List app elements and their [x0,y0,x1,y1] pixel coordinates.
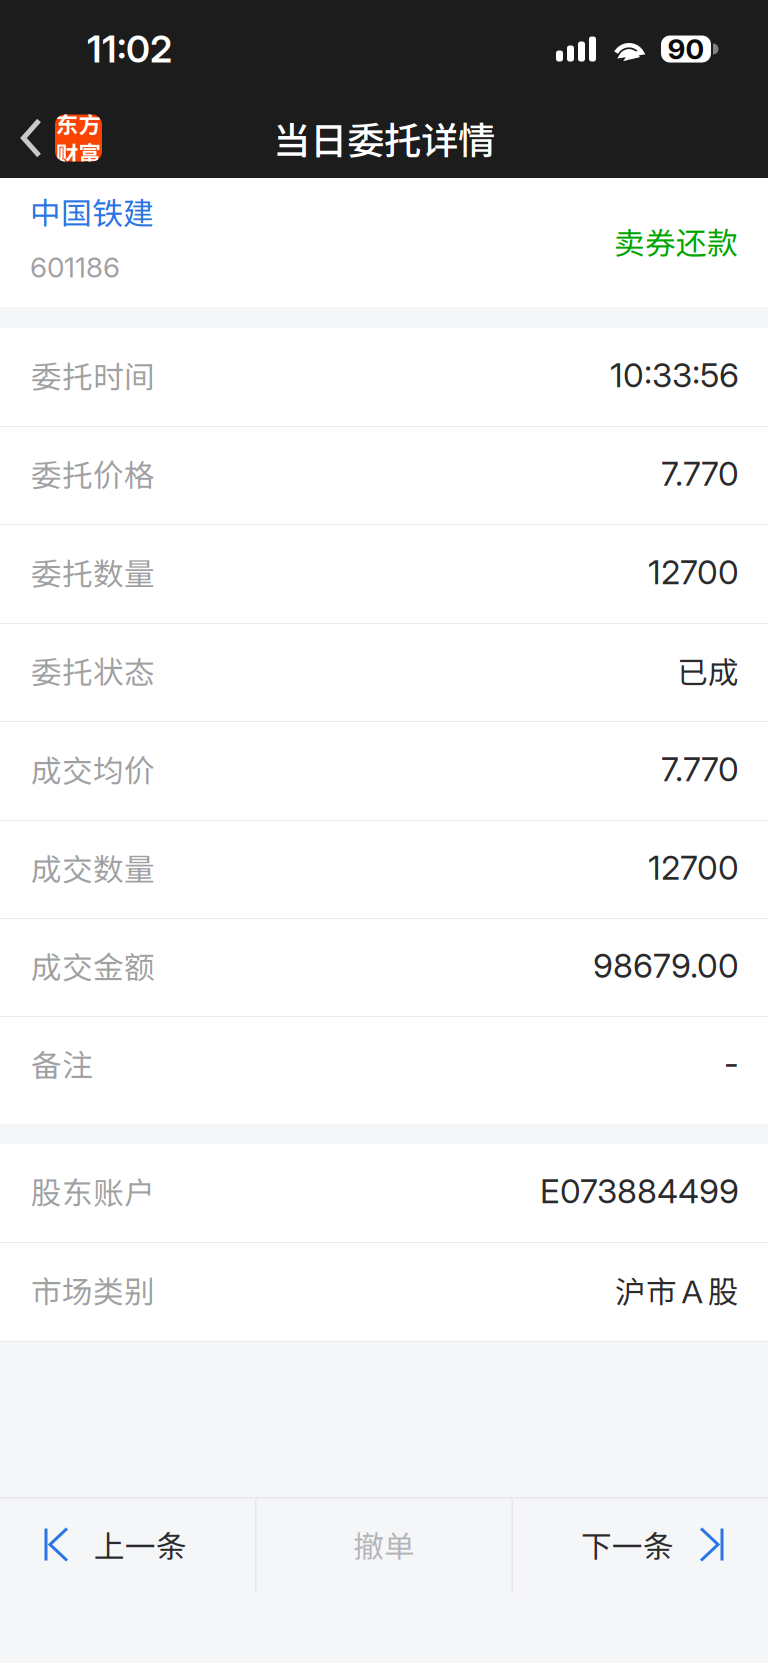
button[interactable]: 上一条 [0,1498,255,1594]
staticText: 委托价格 [31,451,155,496]
staticText: 沪市Ａ股 [615,1268,739,1312]
staticText: 委托数量 [31,550,155,594]
staticText: 12700 [648,552,739,592]
staticText: 财富 [55,136,101,169]
staticText: 7.770 [661,749,739,789]
staticText: - [724,1043,739,1084]
staticText: E073884499 [540,1171,739,1211]
staticText: 7.770 [661,453,739,494]
button[interactable]: 下一条 [513,1498,768,1594]
staticText: 成交金额 [31,943,155,988]
staticText: 撤单 [353,1522,415,1567]
staticText: 98679.00 [593,945,739,986]
staticText: 成交均价 [31,747,155,791]
staticText: 10:33:56 [610,355,739,395]
staticText: 当日委托详情 [273,111,495,165]
staticText: 601186 [30,250,120,284]
staticText: 股东账户 [31,1169,155,1213]
staticText: 备注 [31,1041,93,1086]
staticText: 下一条 [581,1522,674,1567]
staticText: 已成 [677,648,739,693]
staticText: 中国铁建 [30,189,154,233]
button[interactable]: Back [0,98,114,178]
staticText: 上一条 [94,1522,187,1567]
staticText: 委托时间 [31,353,155,397]
button[interactable]: 撤单 [256,1498,511,1594]
staticText: 东方 [55,107,101,139]
staticText: 市场类别 [31,1268,155,1312]
staticText: 卖券还款 [614,219,738,263]
staticText: 12700 [648,847,739,888]
staticText: 委托状态 [31,648,155,693]
staticText: 90 [667,32,704,66]
staticText: 成交数量 [31,845,155,890]
staticText: 11:02 [87,26,172,72]
